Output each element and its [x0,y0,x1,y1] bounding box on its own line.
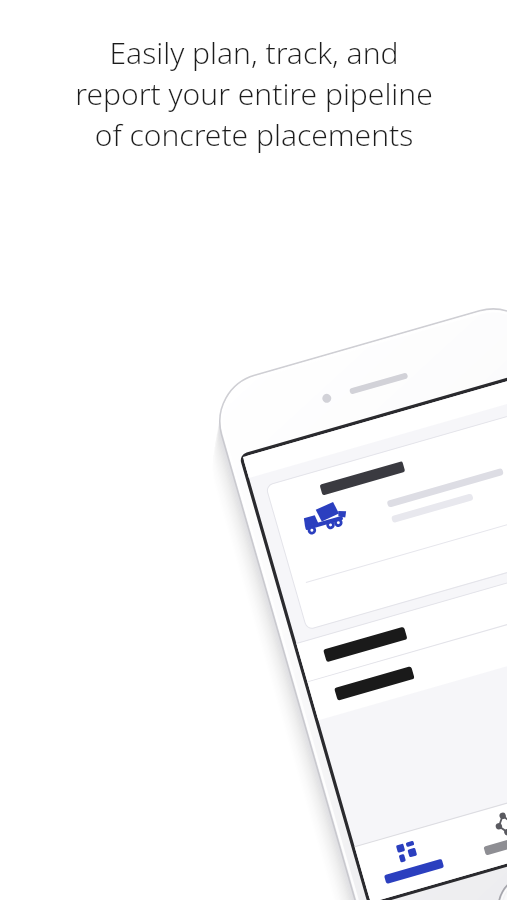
button[interactable]: App preview on phone [0,0,507,900]
staticText: Easily plan, track, and report your enti… [75,32,433,155]
